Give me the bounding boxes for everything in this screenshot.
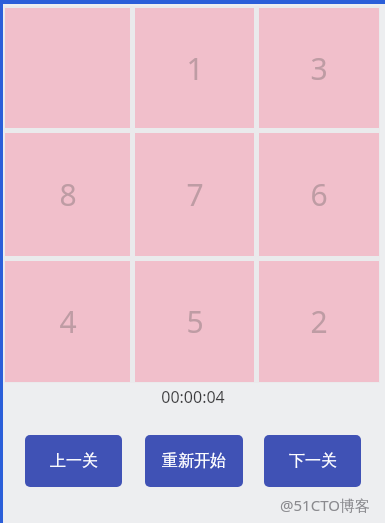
button[interactable]: 6 — [259, 133, 379, 256]
staticText: 2 — [310, 301, 328, 342]
staticText: 4 — [59, 301, 77, 342]
staticText: @51CTO博客 — [280, 495, 370, 515]
button[interactable]: 上一关 — [25, 435, 122, 487]
staticText: 下一关 — [289, 451, 337, 471]
button[interactable]: 下一关 — [264, 435, 361, 487]
staticText: 重新开始 — [162, 451, 226, 471]
staticText: 00:00:04 — [161, 386, 225, 408]
button[interactable]: 1 — [135, 8, 254, 128]
staticText: 6 — [310, 174, 328, 215]
button[interactable]: 4 — [5, 261, 130, 382]
button[interactable]: 7 — [135, 133, 254, 256]
button[interactable]: 重新开始 — [145, 435, 243, 487]
button[interactable]: 3 — [259, 8, 379, 128]
staticText: 5 — [186, 301, 204, 342]
staticText: 上一关 — [50, 451, 98, 471]
button[interactable]: 8 — [5, 133, 130, 256]
staticText: 7 — [186, 174, 204, 215]
button[interactable]: 2 — [259, 261, 379, 382]
staticText: 8 — [59, 174, 77, 215]
button[interactable]: 5 — [135, 261, 254, 382]
staticText: 3 — [310, 48, 328, 89]
staticText: 1 — [186, 48, 204, 89]
